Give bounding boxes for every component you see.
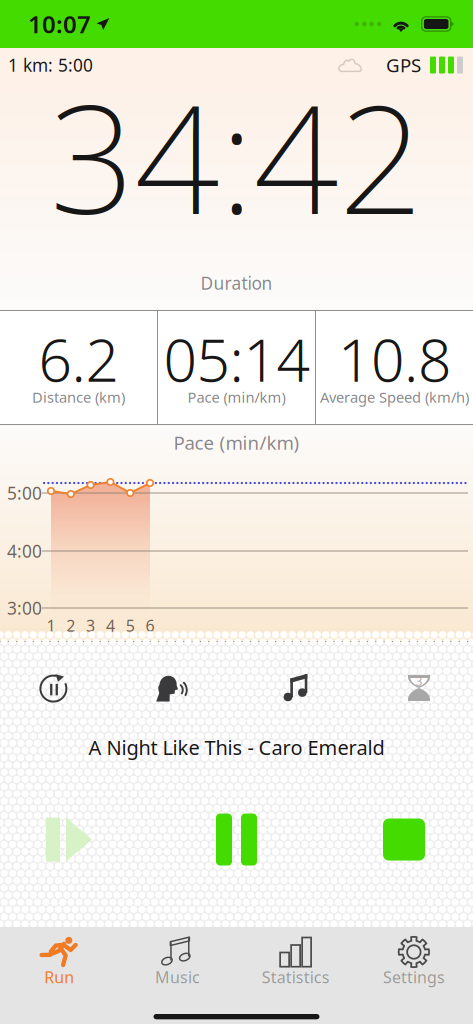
- staticText: Duration: [200, 271, 272, 294]
- staticText: Run: [44, 966, 74, 988]
- staticText: 5: [126, 615, 135, 636]
- button[interactable]: Stop: [349, 805, 459, 875]
- button[interactable]: Resume: [14, 805, 124, 875]
- staticText: 34:42: [49, 57, 423, 255]
- staticText: 6.2: [38, 320, 118, 398]
- staticText: GPS: [386, 53, 421, 77]
- button[interactable]: Run: [0, 927, 118, 993]
- staticText: 3: [86, 615, 95, 636]
- staticText: 3: [415, 673, 422, 689]
- staticText: 2: [66, 615, 75, 636]
- staticText: 1: [46, 615, 55, 636]
- button[interactable]: Auto pause: [12, 664, 96, 712]
- staticText: 6: [145, 615, 154, 636]
- staticText: Pace (min/km): [173, 430, 299, 455]
- staticText: Distance (km): [32, 387, 125, 407]
- button[interactable]: Settings: [355, 927, 473, 993]
- staticText: Settings: [383, 966, 445, 988]
- button[interactable]: Music: [255, 664, 339, 712]
- staticText: 05:14: [163, 320, 309, 398]
- staticText: Statistics: [262, 966, 330, 988]
- staticText: 4:00: [7, 539, 42, 562]
- button[interactable]: Music: [118, 927, 236, 993]
- button[interactable]: Countdown: [377, 664, 461, 712]
- staticText: Pace (min/km): [187, 387, 285, 407]
- staticText: 1 km: 5:00: [8, 53, 93, 76]
- button[interactable]: Pause: [181, 805, 291, 875]
- staticText: Average Speed (km/h): [320, 387, 469, 407]
- staticText: Music: [155, 966, 200, 988]
- button[interactable]: Voice feedback: [134, 664, 218, 712]
- staticText: 3:00: [7, 596, 42, 619]
- button[interactable]: Statistics: [236, 927, 355, 993]
- staticText: 5:00: [7, 481, 42, 504]
- staticText: 10.8: [338, 320, 451, 398]
- staticText: 10:07: [28, 8, 91, 40]
- staticText: 4: [106, 615, 115, 636]
- staticText: A Night Like This - Caro Emerald: [88, 734, 384, 761]
